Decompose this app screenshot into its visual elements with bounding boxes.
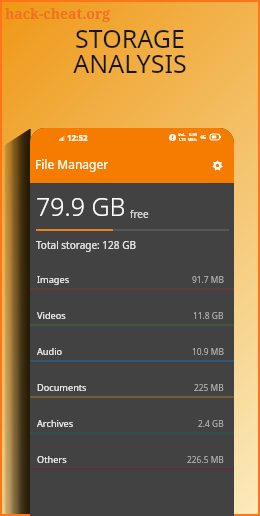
staticText: LTE — [179, 137, 186, 142]
staticText: Others — [37, 453, 67, 466]
staticText: 225 MB — [194, 382, 224, 393]
staticText: 4G — [200, 134, 207, 141]
staticText: Images — [37, 273, 70, 286]
staticText: 226.5 MB — [187, 454, 224, 465]
button[interactable]: File Manager — [30, 146, 234, 183]
staticText: 79.9 GB — [36, 189, 126, 223]
button[interactable]: Others — [30, 434, 234, 470]
button[interactable]: Archives — [30, 398, 234, 434]
staticText: File Manager — [35, 156, 109, 172]
staticText: 10.9 MB — [192, 346, 224, 357]
staticText: MB/s — [188, 137, 197, 142]
button[interactable]: Images — [30, 254, 234, 290]
button[interactable]: Documents — [30, 362, 234, 398]
staticText: free — [130, 207, 149, 221]
staticText: Archives — [37, 417, 74, 430]
staticText: Total storage: 128 GB — [36, 238, 136, 252]
staticText: hack-cheat.org — [5, 4, 111, 23]
staticText: Videos — [37, 309, 66, 322]
staticText: 91.7 MB — [192, 274, 224, 285]
staticText: STORAGE ANALYSIS — [2, 21, 258, 80]
staticText: 12:52 — [67, 132, 88, 143]
staticText: 11.8 GB — [193, 310, 224, 321]
staticText: 2.4 GB — [198, 418, 224, 429]
staticText: Documents — [37, 381, 87, 394]
staticText: VoL — [178, 132, 186, 137]
button[interactable]: Videos — [30, 290, 234, 326]
staticText: 0.00 — [189, 132, 197, 137]
button[interactable]: Settings — [208, 156, 226, 174]
staticText: Audio — [37, 345, 63, 358]
button[interactable]: Audio — [30, 326, 234, 362]
